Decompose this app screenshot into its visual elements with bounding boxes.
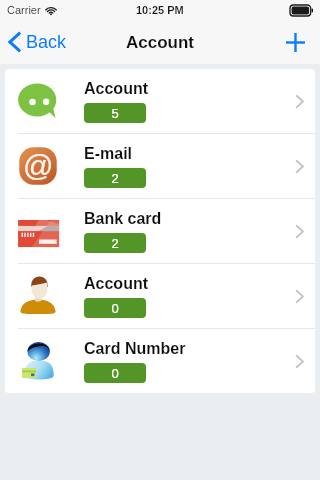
staticText: 2 xyxy=(111,171,119,186)
button[interactable]: Account xyxy=(5,264,315,328)
button[interactable]: @ xyxy=(5,134,315,198)
button[interactable]: Back xyxy=(8,32,67,52)
button[interactable]: Account xyxy=(5,69,315,133)
staticText: 2 xyxy=(111,236,119,251)
staticText: E-mail xyxy=(84,145,133,163)
staticText: Account xyxy=(84,80,148,98)
staticText: 0 xyxy=(111,301,119,316)
staticText: 5 xyxy=(111,106,119,121)
button[interactable]: Bank card xyxy=(5,199,315,263)
staticText: Carrier xyxy=(7,4,41,16)
staticText: 0 xyxy=(111,366,119,381)
staticText: Bank card xyxy=(84,210,162,228)
button[interactable]: Card Number xyxy=(5,329,315,393)
staticText: Card Number xyxy=(84,340,186,358)
staticText: 10:25 PM xyxy=(136,4,184,16)
staticText: Account xyxy=(126,33,194,52)
staticText: Back xyxy=(26,32,67,52)
staticText: Account xyxy=(84,275,148,293)
button[interactable]: Add xyxy=(280,27,310,57)
staticText: @ xyxy=(23,149,54,183)
